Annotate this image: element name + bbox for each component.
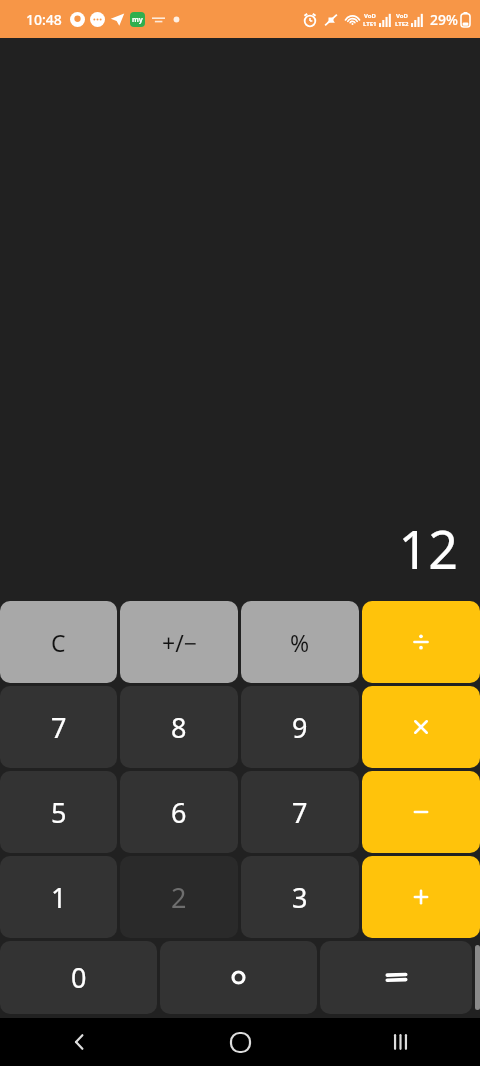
staticText: % xyxy=(290,627,310,658)
button[interactable]: Recent apps xyxy=(320,1018,480,1066)
staticText: 7 xyxy=(51,709,67,746)
staticText: 8 xyxy=(171,709,187,746)
button[interactable]: 8 xyxy=(120,686,238,768)
button[interactable]: Back xyxy=(0,1018,160,1066)
button[interactable]: 9 xyxy=(241,686,359,768)
button[interactable]: 5 xyxy=(0,771,117,853)
button[interactable]: Equals xyxy=(320,941,472,1014)
staticText: +/− xyxy=(162,627,197,658)
button[interactable]: Divide xyxy=(362,601,480,683)
staticText: 6 xyxy=(171,794,187,831)
button[interactable]: C xyxy=(0,601,117,683)
staticText: 7 xyxy=(292,794,308,831)
staticText: 9 xyxy=(292,709,308,746)
button[interactable]: 1 xyxy=(0,856,117,938)
staticText: LTE2 xyxy=(395,20,409,28)
button[interactable]: 6 xyxy=(120,771,238,853)
button[interactable]: 3 xyxy=(241,856,359,938)
button[interactable]: +/− xyxy=(120,601,238,683)
staticText: VoD xyxy=(396,12,408,20)
staticText: 1 xyxy=(51,879,67,916)
staticText: 3 xyxy=(292,879,308,916)
button[interactable]: Plus xyxy=(362,856,480,938)
staticText: 12 xyxy=(398,513,458,584)
button[interactable]: Minus xyxy=(362,771,480,853)
staticText: 2 xyxy=(171,879,187,916)
button[interactable]: Multiply xyxy=(362,686,480,768)
button[interactable]: 7 xyxy=(0,686,117,768)
button[interactable]: 7 xyxy=(241,771,359,853)
button[interactable]: 0 xyxy=(0,941,157,1014)
button[interactable]: Home xyxy=(160,1018,320,1066)
staticText: C xyxy=(51,627,66,658)
button[interactable]: Decimal point xyxy=(160,941,317,1014)
staticText: my xyxy=(132,15,143,25)
staticText: VoD xyxy=(364,12,376,20)
staticText: LTE1 xyxy=(363,20,377,28)
button[interactable]: 2 xyxy=(120,856,238,938)
staticText: 0 xyxy=(71,959,87,996)
button[interactable]: % xyxy=(241,601,359,683)
staticText: 10:48 xyxy=(26,10,62,29)
staticText: 29% xyxy=(430,10,458,29)
staticText: 5 xyxy=(51,794,67,831)
